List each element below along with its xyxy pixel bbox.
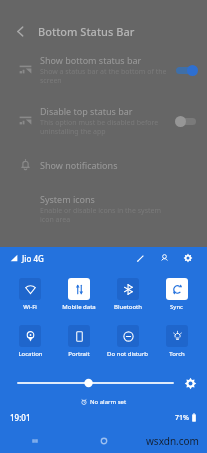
staticText: 71% bbox=[175, 413, 189, 423]
button[interactable]: Wi-Fi bbox=[6, 278, 54, 311]
staticText: Show a status bar at the bottom of the s… bbox=[40, 67, 167, 85]
button[interactable]: Recents bbox=[0, 429, 69, 453]
button[interactable]: System icons bbox=[0, 187, 207, 230]
staticText: Enable or disable icons in the system ic… bbox=[40, 206, 175, 224]
button[interactable]: No alarm set bbox=[0, 398, 207, 406]
button[interactable]: Home bbox=[69, 429, 138, 453]
staticText: Jio 4G bbox=[22, 253, 44, 264]
staticText: Bluetooth bbox=[114, 303, 142, 311]
staticText: Sync bbox=[170, 303, 183, 311]
staticText: Bottom Status Bar bbox=[38, 24, 135, 39]
button[interactable]: User bbox=[155, 249, 173, 267]
staticText: Blacklist bbox=[40, 246, 75, 258]
button[interactable]: Show bottom status bar bbox=[0, 48, 207, 91]
button[interactable]: Portrait bbox=[54, 325, 103, 358]
button[interactable]: Bluetooth bbox=[103, 278, 152, 311]
button[interactable]: Do not disturb bbox=[103, 325, 152, 358]
button[interactable]: Back bbox=[10, 21, 30, 41]
staticText: Disable top status bar bbox=[40, 105, 133, 117]
staticText: Portrait bbox=[68, 350, 90, 358]
staticText: Wi-Fi bbox=[23, 303, 37, 311]
button[interactable]: Settings bbox=[179, 249, 197, 267]
staticText: 19:01 bbox=[10, 412, 31, 423]
staticText: System icons bbox=[40, 193, 95, 205]
button[interactable]: Mobile data bbox=[54, 278, 103, 311]
staticText: Do not disturb bbox=[107, 350, 148, 358]
button[interactable]: Brightness bbox=[18, 376, 173, 390]
button[interactable]: Sync bbox=[152, 278, 201, 311]
staticText: wsxdn.com bbox=[146, 434, 199, 448]
staticText: This option must be disabled before unin… bbox=[40, 118, 159, 136]
button[interactable]: Disable top status bar bbox=[0, 99, 207, 142]
button[interactable]: Edit tiles bbox=[131, 249, 149, 267]
staticText: Show notifications bbox=[40, 159, 118, 171]
button[interactable]: Torch bbox=[152, 325, 201, 358]
button[interactable]: Location bbox=[6, 325, 54, 358]
staticText: No alarm set bbox=[90, 398, 127, 406]
button[interactable]: Show notifications bbox=[0, 152, 207, 177]
staticText: Torch bbox=[169, 350, 185, 358]
button[interactable] bbox=[175, 115, 197, 127]
staticText: Choose apps to hide the status bar in bbox=[40, 259, 163, 269]
staticText: Mobile data bbox=[62, 303, 96, 311]
button[interactable]: Auto brightness bbox=[181, 374, 199, 392]
button[interactable] bbox=[175, 64, 197, 76]
button[interactable]: Blacklist bbox=[0, 240, 207, 275]
staticText: Show bottom status bar bbox=[40, 54, 142, 66]
staticText: Location bbox=[18, 350, 43, 358]
